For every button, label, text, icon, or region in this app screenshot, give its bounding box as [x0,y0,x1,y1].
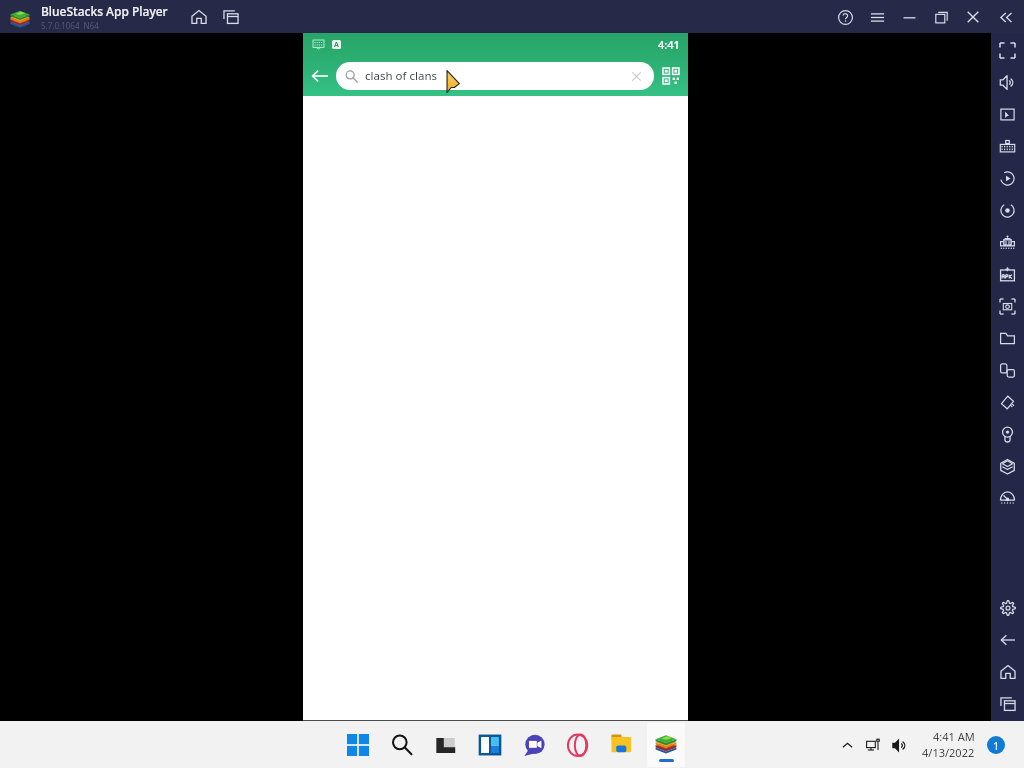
button[interactable]: Show hidden icons [834,732,860,758]
button[interactable]: Mouse cursor [991,98,1024,130]
button[interactable]: Screenshot [991,290,1024,322]
button[interactable]: Task view [424,723,468,767]
button[interactable]: Restore [925,1,957,33]
button[interactable]: Game controls [991,130,1024,162]
button[interactable]: BlueStacks [644,723,688,767]
button[interactable]: Close [957,1,989,33]
staticText: 4:41 AM [933,729,975,744]
button[interactable]: Rotate [991,354,1024,386]
button[interactable]: Back [991,624,1024,656]
button[interactable]: Volume [886,732,912,758]
staticText: A [334,40,339,49]
button[interactable]: Multi instance manager [216,2,246,32]
button[interactable]: Full screen [991,34,1024,66]
staticText: 5.7.0.1064 N64 [41,20,99,31]
button[interactable]: Real time translation [991,226,1024,258]
staticText: BlueStacks App Player [41,3,168,19]
button[interactable]: Macro recorder [991,162,1024,194]
button[interactable]: File Explorer [600,723,644,767]
button[interactable]: clash of clans [336,62,654,90]
button[interactable]: Home [991,656,1024,688]
button[interactable]: Recent apps [991,688,1024,720]
staticText: 1 [993,738,1000,753]
button[interactable]: Volume [991,66,1024,98]
button[interactable]: Settings [991,592,1024,624]
button[interactable]: Screen record [991,194,1024,226]
button[interactable]: Widgets [468,723,512,767]
button[interactable]: Search [380,723,424,767]
button[interactable]: Notifications [987,736,1005,754]
button[interactable]: Help [829,1,861,33]
button[interactable]: Shake [991,386,1024,418]
button[interactable]: Performance [991,482,1024,514]
staticText: 4:41 [658,37,680,52]
button[interactable]: Start [336,723,380,767]
button[interactable]: Back [303,59,336,92]
button[interactable]: Clear search [624,64,648,88]
button[interactable]: Location [991,418,1024,450]
button[interactable]: Home [184,2,214,32]
button[interactable]: Collapse sidebar [989,1,1021,33]
button[interactable]: Multi instance [991,450,1024,482]
staticText: clash of clans [365,68,438,84]
button[interactable]: Media manager [991,322,1024,354]
staticText: 4/13/2022 [922,745,975,760]
button[interactable]: Scan QR code [654,59,688,93]
button[interactable]: Minimize [893,1,925,33]
button[interactable]: Network [860,732,886,758]
button[interactable]: Menu [861,1,893,33]
button[interactable]: Chat [512,723,556,767]
button[interactable]: Opera [556,723,600,767]
button[interactable]: Install APK [991,258,1024,290]
button[interactable]: 4:41 AM [918,729,979,760]
